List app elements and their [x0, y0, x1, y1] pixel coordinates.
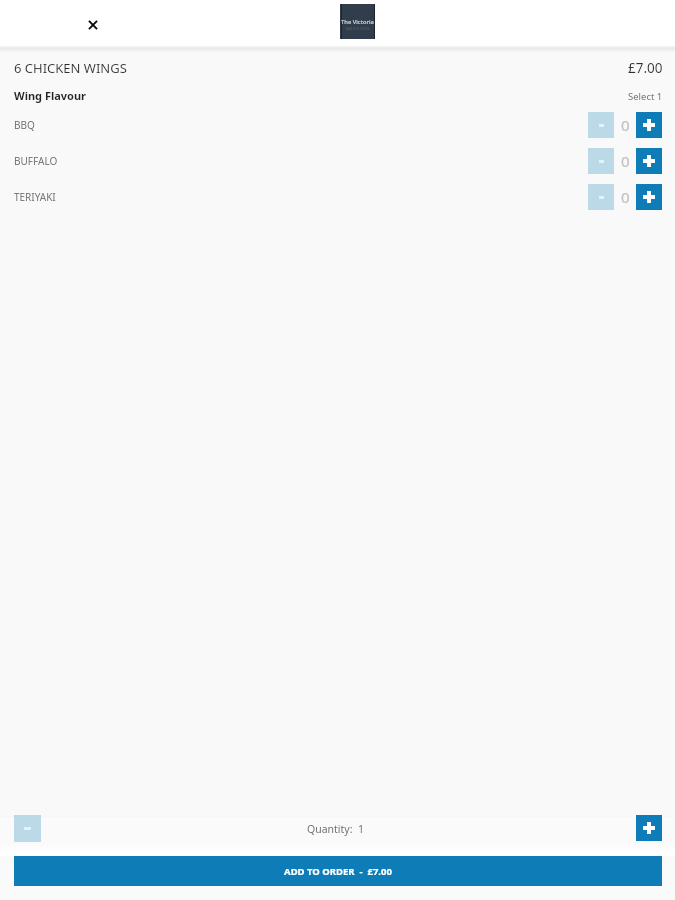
- staticText: TERIYAKI: [14, 190, 56, 204]
- staticText: Select 1: [628, 90, 663, 103]
- staticText: 0: [621, 115, 630, 135]
- button[interactable]: Increase quantity: [636, 148, 662, 174]
- button[interactable]: Increase quantity: [636, 112, 662, 138]
- staticText: BBQ: [14, 118, 35, 132]
- button[interactable]: ADD TO ORDER - £7.00: [14, 856, 662, 886]
- button[interactable]: Close: [81, 13, 105, 37]
- button[interactable]: Decrease quantity: [14, 815, 41, 842]
- button[interactable]: The Victoria logo: [340, 4, 375, 39]
- button[interactable]: Decrease quantity: [588, 112, 614, 138]
- button[interactable]: Decrease quantity: [588, 148, 614, 174]
- staticText: Quantity: 1: [307, 822, 364, 836]
- staticText: 0: [621, 187, 630, 207]
- staticText: Wing Flavour: [14, 88, 87, 103]
- button[interactable]: Increase quantity: [636, 815, 662, 841]
- staticText: The Victoria: [341, 18, 374, 26]
- button[interactable]: Decrease quantity: [588, 184, 614, 210]
- staticText: BUFFALO: [14, 154, 58, 168]
- staticText: £7.00: [628, 59, 663, 77]
- staticText: 0: [621, 151, 630, 171]
- staticText: 6 CHICKEN WINGS: [14, 59, 127, 77]
- staticText: ADD TO ORDER - £7.00: [284, 865, 392, 878]
- button[interactable]: Increase quantity: [636, 184, 662, 210]
- staticText: BAR & KITCHEN: [346, 27, 370, 31]
